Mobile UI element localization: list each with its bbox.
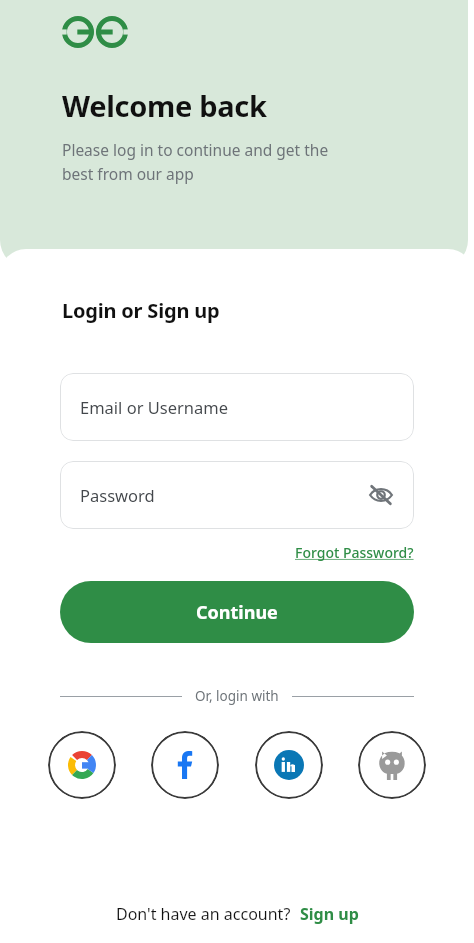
button[interactable]: Password: [60, 461, 414, 529]
button[interactable]: Sign in with LinkedIn: [255, 731, 323, 799]
button[interactable]: Email or Username: [60, 373, 414, 441]
staticText: Please log in to continue and get the be…: [62, 139, 329, 184]
button[interactable]: Continue: [60, 581, 414, 643]
staticText: Sign up: [300, 903, 359, 925]
button[interactable]: Sign in with Facebook: [151, 731, 219, 799]
staticText: Email or Username: [80, 396, 229, 418]
staticText: Continue: [196, 600, 278, 625]
staticText: Password: [80, 484, 155, 506]
staticText: Or, login with: [195, 687, 279, 705]
staticText: Login or Sign up: [62, 297, 220, 324]
staticText: Welcome back: [62, 86, 267, 125]
staticText: Don't have an account?: [116, 903, 291, 925]
button[interactable]: Sign in with Google: [48, 731, 116, 799]
button[interactable]: Sign in with GitHub: [358, 731, 426, 799]
staticText: Forgot Password?: [295, 543, 414, 562]
button[interactable]: Forgot Password?: [295, 543, 414, 562]
button[interactable]: Sign up: [300, 903, 359, 925]
button[interactable]: Show password: [366, 480, 396, 510]
